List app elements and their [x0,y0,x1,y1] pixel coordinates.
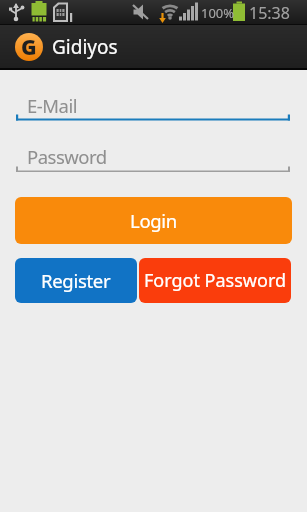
button[interactable]: Password [16,132,290,172]
staticText: G [21,33,37,61]
button[interactable]: Register [15,258,137,303]
button[interactable]: Forgot Password [139,258,291,303]
staticText: Login [130,208,177,233]
staticText: Register [41,268,111,293]
staticText: Forgot Password [144,268,287,293]
staticText: 100% [201,4,235,22]
staticText: Password [27,144,107,169]
staticText: Gidiyos [52,34,118,60]
button[interactable]: E-Mail [16,80,290,121]
staticText: E-Mail [27,93,77,118]
staticText: 15:38 [249,2,290,24]
button[interactable]: Login [15,197,292,244]
